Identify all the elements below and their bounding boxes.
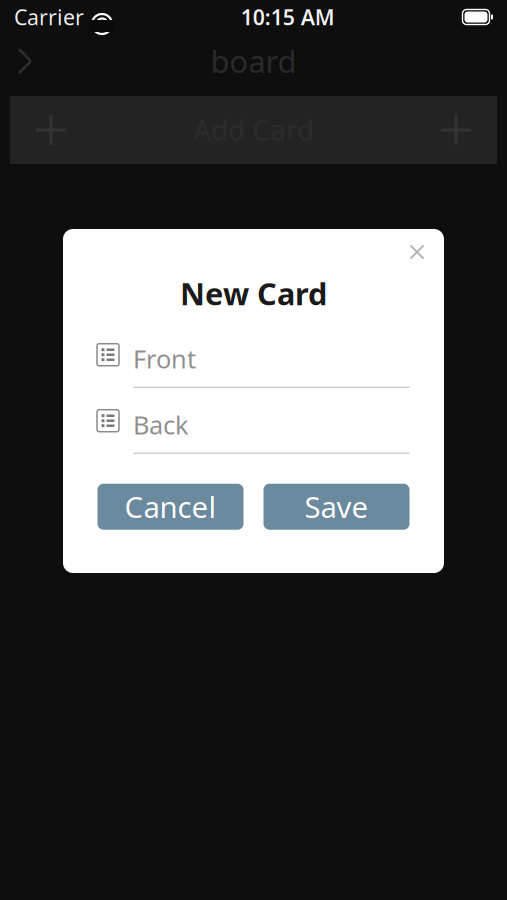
button[interactable]: Close: [404, 229, 444, 265]
staticText: New Card: [180, 273, 327, 314]
staticText: Front: [133, 342, 196, 375]
staticText: Cancel: [124, 487, 216, 526]
button[interactable]: Cancel: [97, 484, 243, 530]
staticText: Back: [133, 408, 189, 441]
button[interactable]: Back: [0, 36, 50, 86]
staticText: 10:15 AM: [241, 3, 335, 31]
staticText: board: [210, 41, 296, 81]
staticText: Carrier: [14, 3, 84, 31]
staticText: Save: [304, 487, 368, 526]
button[interactable]: Save: [263, 484, 409, 530]
